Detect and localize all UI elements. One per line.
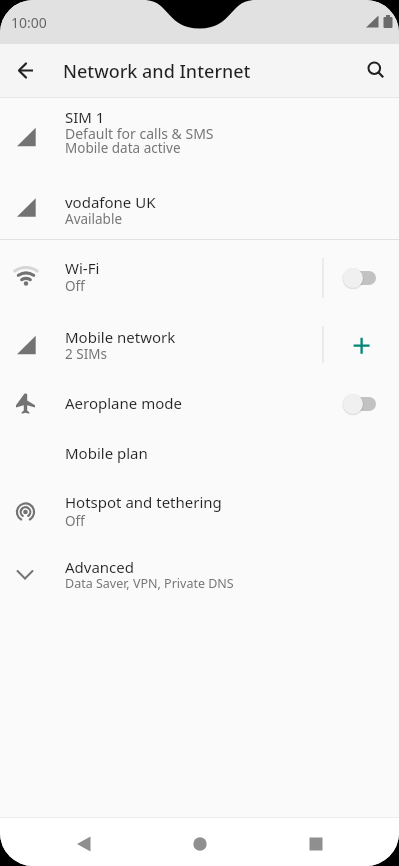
staticText: Wi-Fi <box>65 258 100 278</box>
button[interactable] <box>10 55 41 86</box>
staticText: vodafone UK <box>65 192 156 212</box>
staticText: SIM 1 <box>65 107 105 127</box>
staticText: Hotspot and tethering <box>65 492 222 512</box>
staticText: Mobile network <box>65 327 176 347</box>
staticText: 2 SIMs <box>65 345 107 363</box>
button[interactable] <box>61 817 106 866</box>
staticText: Advanced <box>65 557 135 577</box>
staticText: Network and Internet <box>63 59 251 84</box>
button[interactable]: Aeroplane mode <box>0 376 399 432</box>
staticText: Data Saver, VPN, Private DNS <box>65 575 234 592</box>
button[interactable]: Wi-Fi <box>0 240 399 308</box>
button[interactable]: SIM 1 <box>0 97 399 173</box>
button[interactable]: Mobile plan <box>0 432 399 480</box>
button[interactable]: Advanced <box>0 544 399 610</box>
button[interactable] <box>338 264 382 292</box>
button[interactable]: vodafone UK <box>0 173 399 240</box>
staticText: Mobile plan <box>65 443 148 463</box>
staticText: 10:00 <box>11 13 47 32</box>
button[interactable]: Hotspot and tethering <box>0 480 399 544</box>
button[interactable] <box>346 330 377 361</box>
staticText: Off <box>65 277 85 295</box>
button[interactable] <box>293 817 338 866</box>
button[interactable] <box>338 390 382 418</box>
staticText: Default for calls & SMS <box>65 124 214 143</box>
button[interactable]: Mobile network <box>0 308 399 376</box>
staticText: Aeroplane mode <box>65 393 182 413</box>
staticText: Off <box>65 512 85 530</box>
button[interactable] <box>177 817 222 866</box>
staticText: Available <box>65 210 122 228</box>
staticText: Mobile data active <box>65 139 181 157</box>
button[interactable] <box>360 52 392 84</box>
